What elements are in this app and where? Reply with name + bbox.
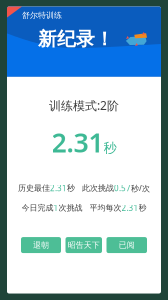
staticText: 新纪录！ bbox=[38, 27, 114, 50]
staticText: 秒 bbox=[138, 203, 146, 213]
staticText: 今日完成 bbox=[21, 203, 53, 213]
staticText: 历史最佳 bbox=[18, 183, 50, 193]
staticText: 秒 bbox=[67, 183, 75, 193]
staticText: 1 bbox=[53, 202, 58, 213]
button[interactable]: 退朝 bbox=[21, 237, 61, 253]
staticText: 舒尔特训练 bbox=[22, 10, 62, 20]
staticText: 秒/次 bbox=[131, 183, 150, 193]
staticText: 次挑战 bbox=[58, 203, 82, 213]
staticText: 2.31 bbox=[50, 183, 67, 193]
button[interactable]: 已阅 bbox=[106, 237, 147, 253]
staticText: 此次挑战 bbox=[82, 183, 114, 193]
staticText: 已阅 bbox=[119, 240, 135, 250]
staticText: 平均每次 bbox=[89, 203, 121, 213]
staticText: 秒 bbox=[103, 140, 116, 156]
staticText: 训练模式:2阶 bbox=[49, 97, 119, 113]
staticText: 2.31 bbox=[121, 202, 138, 213]
staticText: 退朝 bbox=[33, 240, 49, 250]
staticText: 2.31 bbox=[51, 124, 103, 160]
staticText: 昭告天下 bbox=[68, 240, 100, 250]
button[interactable]: 昭告天下 bbox=[65, 237, 102, 253]
staticText: 0.57 bbox=[114, 183, 131, 193]
